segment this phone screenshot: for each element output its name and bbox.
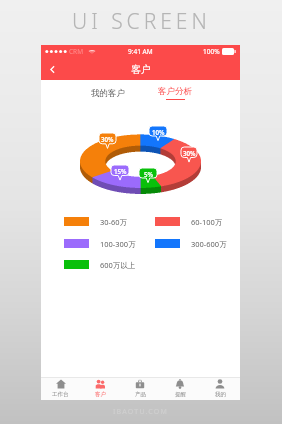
button[interactable]: 我的客户 [88, 86, 128, 100]
staticText: 提醒 [175, 391, 186, 398]
staticText: CRM [69, 47, 84, 56]
staticText: 15% [114, 167, 127, 175]
button[interactable]: 我的 [200, 377, 240, 400]
button[interactable]: 客户分析 [155, 86, 195, 105]
staticText: 产品 [135, 391, 146, 398]
staticText: 300-600万 [191, 239, 227, 248]
button[interactable]: 300-600万 [155, 239, 227, 248]
staticText: 30% [183, 149, 196, 157]
staticText: 100-300万 [100, 239, 136, 248]
staticText: 30-60万 [100, 217, 128, 226]
staticText: 60-100万 [191, 217, 223, 226]
staticText: 100% [203, 47, 220, 56]
button[interactable]: 客户 [80, 377, 120, 400]
staticText: 客户 [95, 391, 106, 398]
staticText: UI SCREEN [72, 7, 211, 36]
staticText: 我的 [215, 391, 226, 398]
staticText: IBAOTU.COM [113, 407, 169, 417]
button[interactable]: 60-100万 [155, 217, 223, 226]
staticText: 工作台 [52, 391, 69, 398]
button[interactable]: 30-60万 [64, 217, 128, 226]
button[interactable]: 工作台 [41, 377, 80, 400]
staticText: 9:41 AM [128, 47, 153, 56]
staticText: 我的客户 [91, 88, 125, 99]
button[interactable]: 600万以上 [64, 260, 136, 269]
staticText: 600万以上 [100, 260, 136, 269]
staticText: 客户分析 [158, 86, 192, 97]
staticText: 30% [101, 135, 114, 143]
button[interactable]: 产品 [120, 377, 160, 400]
staticText: 10% [152, 128, 165, 136]
button[interactable]: 提醒 [160, 377, 200, 400]
button[interactable]: Back [41, 58, 63, 80]
button[interactable]: 100-300万 [64, 239, 136, 248]
staticText: 5% [144, 170, 153, 178]
staticText: 客户 [131, 63, 151, 76]
